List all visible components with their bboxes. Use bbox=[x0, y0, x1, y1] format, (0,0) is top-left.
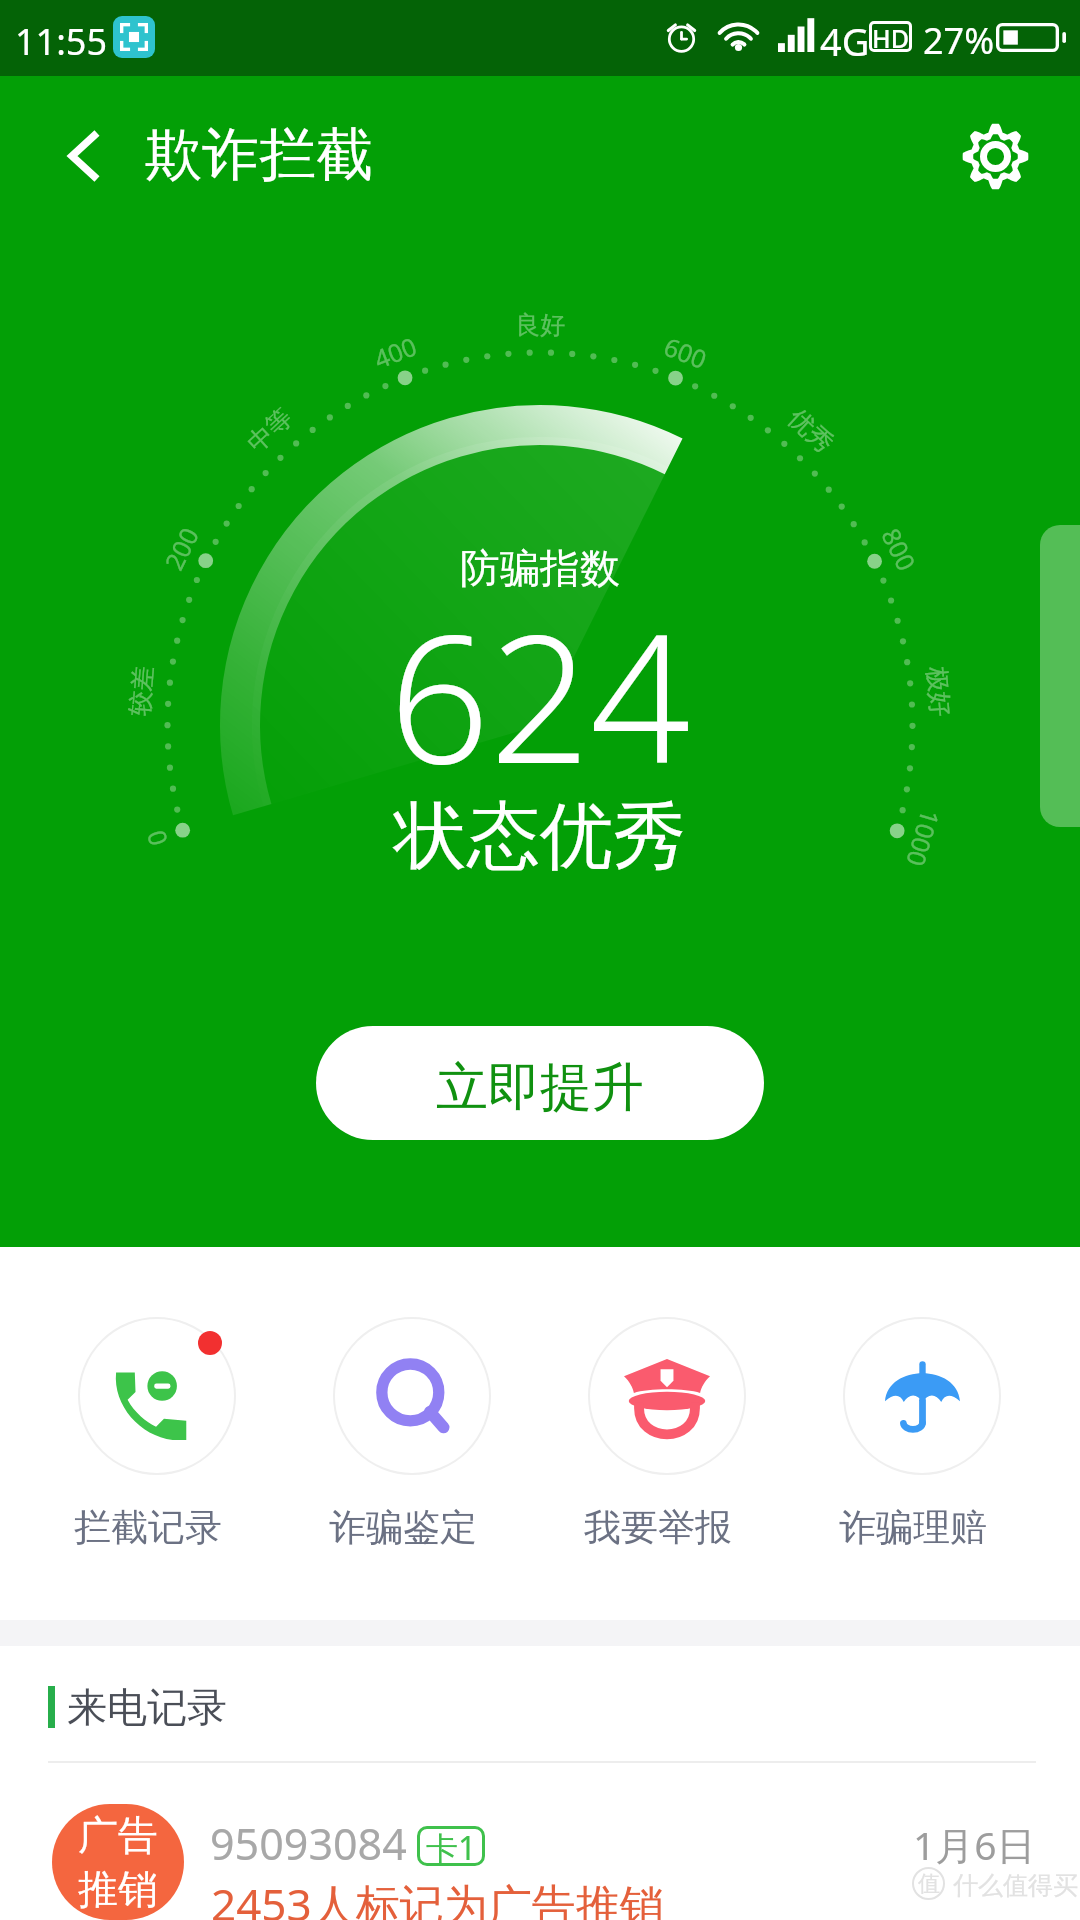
staticText: 立即提升 bbox=[436, 1055, 644, 1121]
button[interactable]: 立即提升 bbox=[316, 1026, 764, 1140]
button[interactable]: More bbox=[1040, 525, 1080, 827]
button[interactable]: 拦截记录 bbox=[57, 1317, 257, 1577]
staticText: 欺诈拦截 bbox=[145, 119, 373, 191]
staticText: 诈骗鉴定 bbox=[329, 1504, 477, 1551]
staticText: 我要举报 bbox=[584, 1504, 732, 1551]
button[interactable]: 我要举报 bbox=[567, 1317, 767, 1577]
staticText: 什么值得买 bbox=[953, 1870, 1078, 1901]
staticText: 推销 bbox=[78, 1864, 158, 1914]
staticText: 来电记录 bbox=[67, 1682, 227, 1732]
staticText: 值 bbox=[918, 1870, 940, 1898]
staticText: 广告 bbox=[78, 1810, 158, 1860]
button[interactable]: 诈骗理赔 bbox=[822, 1317, 1022, 1577]
button[interactable]: 广告 bbox=[0, 1786, 1080, 1920]
staticText: 624 bbox=[389, 575, 691, 815]
staticText: 拦截记录 bbox=[74, 1504, 222, 1551]
staticText: 27% bbox=[923, 16, 995, 65]
staticText: HD bbox=[872, 21, 909, 52]
button[interactable]: Settings bbox=[953, 114, 1037, 198]
staticText: 2453人标记为广告推销 bbox=[211, 1874, 664, 1920]
staticText: 11:55 bbox=[15, 17, 108, 66]
staticText: 防骗指数 bbox=[460, 543, 620, 593]
button[interactable]: 诈骗鉴定 bbox=[312, 1317, 512, 1577]
staticText: 95093084 bbox=[210, 1814, 407, 1873]
staticText: 1月6日 bbox=[913, 1818, 1036, 1871]
staticText: 诈骗理赔 bbox=[839, 1504, 987, 1551]
staticText: 4G bbox=[820, 15, 870, 67]
button[interactable]: Back bbox=[42, 114, 126, 198]
staticText: 卡1 bbox=[426, 1826, 477, 1866]
staticText: 状态优秀 bbox=[394, 791, 686, 883]
